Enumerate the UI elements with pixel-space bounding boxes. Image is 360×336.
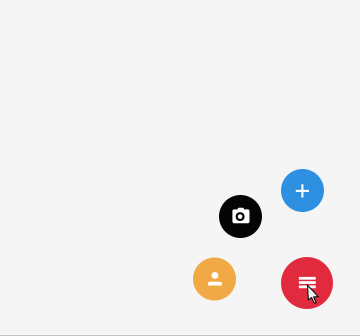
button[interactable]: Camera — [219, 195, 262, 238]
button[interactable]: Menu — [281, 257, 333, 309]
button[interactable]: Profile — [193, 257, 236, 300]
button[interactable]: New — [281, 169, 324, 212]
